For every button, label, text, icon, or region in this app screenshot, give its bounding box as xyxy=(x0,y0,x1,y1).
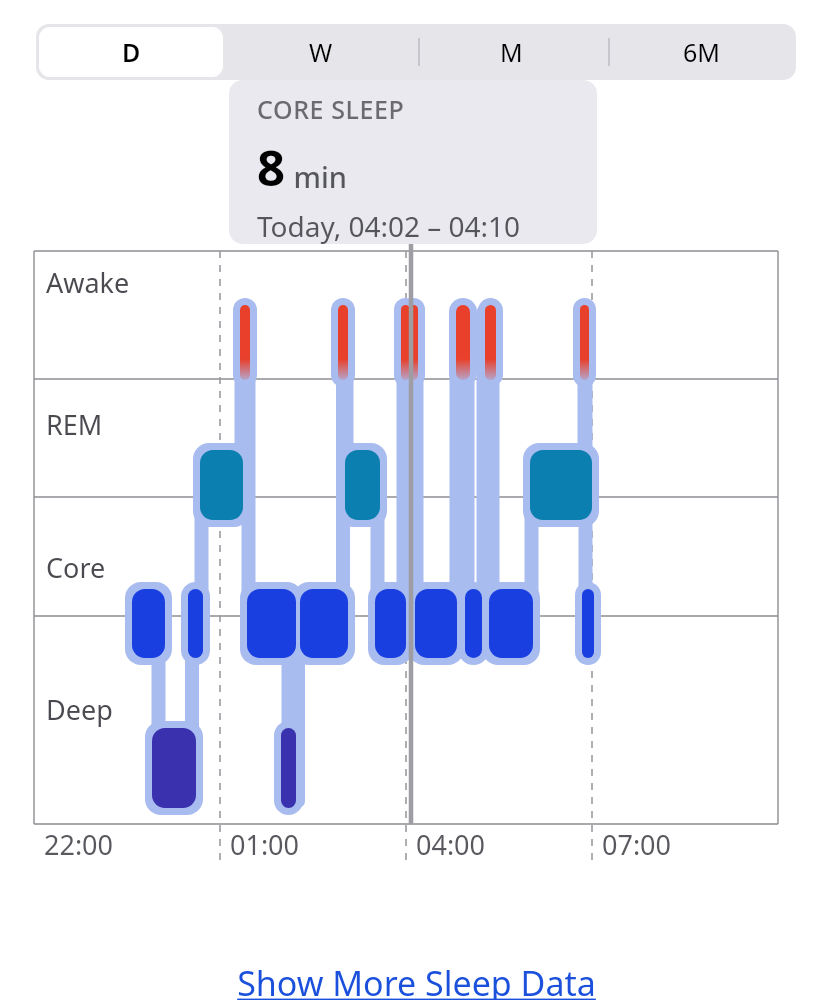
staticText: REM xyxy=(46,406,103,443)
button[interactable]: Show More Sleep Data xyxy=(0,960,832,1000)
staticText: Awake xyxy=(46,264,130,301)
staticText: Today, 04:02 – 04:10 xyxy=(257,207,521,244)
staticText: Deep xyxy=(46,691,113,728)
staticText: 04:00 xyxy=(416,826,486,863)
staticText: 6M xyxy=(683,35,720,69)
staticText: M xyxy=(500,35,523,69)
staticText: W xyxy=(309,35,333,69)
button[interactable]: M xyxy=(419,27,603,77)
staticText: CORE SLEEP xyxy=(257,92,405,126)
staticText: 01:00 xyxy=(230,826,300,863)
staticText: Show More Sleep Data xyxy=(237,960,596,1000)
button[interactable]: W xyxy=(229,27,413,77)
staticText: min xyxy=(286,157,348,196)
staticText: 07:00 xyxy=(602,826,672,863)
staticText: D xyxy=(122,35,141,69)
button[interactable]: D xyxy=(39,27,223,77)
button[interactable]: 6M xyxy=(609,27,793,77)
staticText: Core xyxy=(46,549,106,586)
staticText: 8 xyxy=(257,134,286,201)
staticText: 22:00 xyxy=(44,826,114,863)
button[interactable]: CORE SLEEP xyxy=(229,80,597,244)
